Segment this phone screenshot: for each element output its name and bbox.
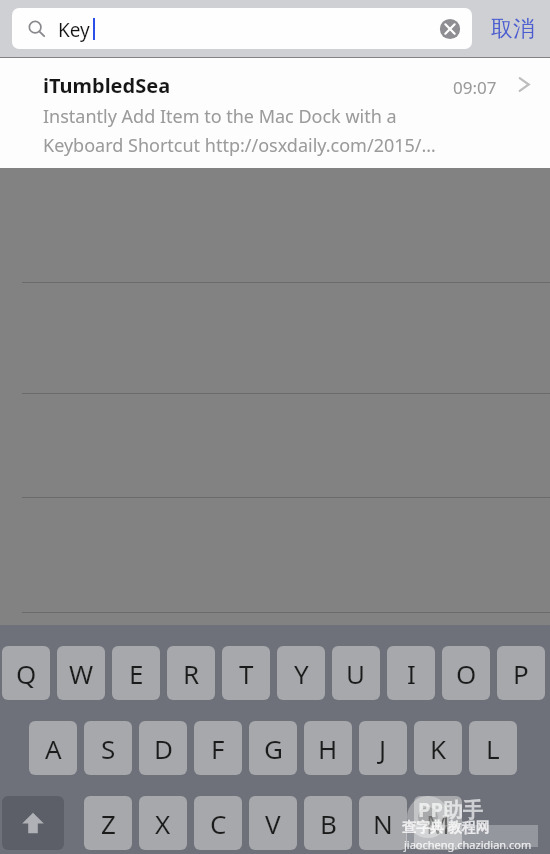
button[interactable]: F (194, 721, 242, 775)
button[interactable]: B (304, 796, 352, 850)
staticText: 查字典 教程网 (402, 817, 490, 836)
button[interactable]: K (414, 721, 462, 775)
staticText: H (318, 731, 338, 766)
button[interactable]: iTumbledSea (0, 58, 550, 168)
staticText: PP助手 (418, 796, 483, 823)
staticText: G (264, 731, 283, 766)
staticText: C (210, 806, 227, 841)
staticText: Keyboard Shortcut http://osxdaily.com/20… (43, 133, 436, 158)
button[interactable]: I (387, 646, 435, 700)
staticText: W (69, 656, 94, 691)
staticText: S (101, 731, 116, 766)
staticText: Instantly Add Item to the Mac Dock with … (43, 104, 397, 129)
staticText: O (456, 656, 477, 691)
button[interactable]: A (29, 721, 77, 775)
staticText: Y (294, 656, 309, 691)
staticText: A (45, 731, 62, 766)
staticText: N (373, 806, 393, 841)
staticText: Q (16, 656, 37, 691)
staticText: E (129, 656, 144, 691)
staticText: K (430, 731, 447, 766)
staticText: D (154, 731, 173, 766)
staticText: X (155, 806, 171, 841)
button[interactable]: N (359, 796, 407, 850)
button[interactable]: Clear text (438, 17, 462, 41)
button[interactable]: X (139, 796, 187, 850)
staticText: 取消 (491, 15, 535, 43)
button[interactable]: O (442, 646, 490, 700)
button[interactable]: 取消 (480, 6, 546, 51)
button[interactable]: G (249, 721, 297, 775)
staticText: V (265, 806, 281, 841)
button[interactable]: V (249, 796, 297, 850)
button[interactable]: D (139, 721, 187, 775)
button[interactable]: C (194, 796, 242, 850)
button[interactable]: E (112, 646, 160, 700)
button[interactable]: U (332, 646, 380, 700)
button[interactable]: T (222, 646, 270, 700)
staticText: R (183, 656, 200, 691)
button[interactable]: S (84, 721, 132, 775)
button[interactable]: P (497, 646, 545, 700)
staticText: T (239, 656, 254, 691)
button[interactable]: R (167, 646, 215, 700)
button[interactable]: J (359, 721, 407, 775)
staticText: Key (58, 17, 90, 43)
staticText: I (407, 656, 416, 691)
button[interactable]: Key (12, 8, 472, 49)
button[interactable]: Z (84, 796, 132, 850)
button[interactable]: W (57, 646, 105, 700)
staticText: Z (101, 806, 116, 841)
staticText: M (426, 806, 450, 841)
button[interactable]: L (469, 721, 517, 775)
button[interactable]: Y (277, 646, 325, 700)
staticText: 09:07 (453, 76, 497, 99)
staticText: F (211, 731, 225, 766)
button[interactable]: M (414, 796, 462, 850)
button[interactable]: Shift (2, 796, 64, 850)
staticText: jiaocheng.chazidian.com (404, 837, 532, 852)
staticText: P (513, 656, 529, 691)
staticText: L (486, 731, 500, 766)
button[interactable]: H (304, 721, 352, 775)
staticText: J (379, 731, 387, 766)
staticText: B (320, 806, 337, 841)
button[interactable]: Q (2, 646, 50, 700)
staticText: U (346, 656, 366, 691)
staticText: iTumbledSea (43, 72, 171, 99)
